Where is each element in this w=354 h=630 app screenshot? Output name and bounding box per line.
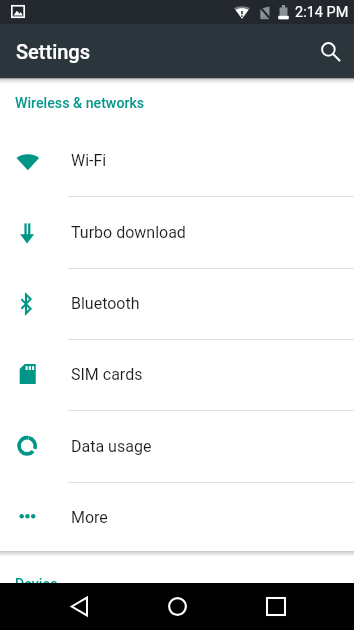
staticText: Bluetooth xyxy=(71,294,140,313)
button[interactable]: Bluetooth xyxy=(0,269,354,340)
staticText: Device xyxy=(15,576,58,593)
staticText: SIM cards xyxy=(71,365,143,384)
button[interactable]: Wi-Fi xyxy=(0,126,354,197)
button[interactable]: Turbo download xyxy=(0,198,354,269)
staticText: Wi-Fi xyxy=(71,151,107,170)
button[interactable]: Search xyxy=(306,27,354,75)
button[interactable]: SIM cards xyxy=(0,340,354,411)
button[interactable]: More xyxy=(0,483,354,554)
staticText: Turbo download xyxy=(71,223,186,242)
staticText: Settings xyxy=(16,40,91,63)
button[interactable]: Back xyxy=(55,583,103,630)
button[interactable]: Recent apps xyxy=(252,583,300,630)
button[interactable]: Home xyxy=(153,583,201,630)
staticText: More xyxy=(71,508,108,527)
button[interactable]: Data usage xyxy=(0,412,354,483)
staticText: 2:14 PM xyxy=(295,4,349,21)
staticText: Data usage xyxy=(71,437,152,456)
staticText: Wireless & networks xyxy=(15,95,145,112)
